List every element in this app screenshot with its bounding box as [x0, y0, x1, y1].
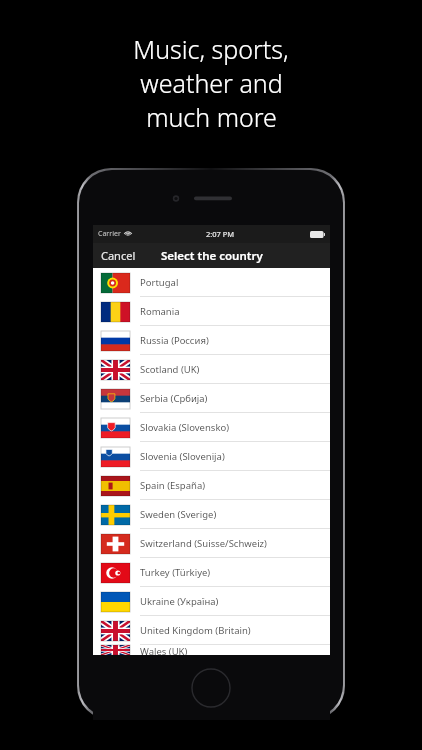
button[interactable]: Russia (Россия) — [93, 326, 330, 355]
staticText: Sweden (Sverige) — [140, 508, 217, 521]
staticText: Wales (UK) — [140, 645, 188, 655]
button[interactable]: Switzerland (Suisse/Schweiz) — [93, 529, 330, 558]
staticText: Turkey (Türkiye) — [140, 566, 211, 579]
staticText: Cancel — [101, 248, 136, 263]
button[interactable]: Serbia (Србија) — [93, 384, 330, 413]
button[interactable]: Wales (UK) — [93, 645, 330, 655]
staticText: Romania — [140, 305, 180, 318]
button[interactable]: Cancel — [98, 245, 139, 266]
button[interactable]: Ukraine (Україна) — [93, 587, 330, 616]
staticText: Carrier — [98, 229, 121, 239]
staticText: 2:07 PM — [206, 229, 235, 239]
staticText: Music, sports, — [133, 32, 289, 66]
staticText: Slovenia (Slovenija) — [140, 450, 225, 463]
button[interactable]: Portugal — [93, 268, 330, 297]
staticText: Switzerland (Suisse/Schweiz) — [140, 537, 267, 550]
staticText: weather and — [140, 66, 283, 100]
staticText: Serbia (Србија) — [140, 392, 208, 405]
staticText: Scotland (UK) — [140, 363, 200, 376]
button[interactable]: Slovenia (Slovenija) — [93, 442, 330, 471]
button[interactable]: Spain (España) — [93, 471, 330, 500]
staticText: Select the country — [161, 248, 263, 264]
button[interactable]: United Kingdom (Britain) — [93, 616, 330, 645]
button[interactable]: Scotland (UK) — [93, 355, 330, 384]
button[interactable]: Turkey (Türkiye) — [93, 558, 330, 587]
staticText: Slovakia (Slovensko) — [140, 421, 230, 434]
button[interactable]: Romania — [93, 297, 330, 326]
button[interactable]: Sweden (Sverige) — [93, 500, 330, 529]
button[interactable]: Slovakia (Slovensko) — [93, 413, 330, 442]
staticText: Ukraine (Україна) — [140, 595, 219, 608]
staticText: United Kingdom (Britain) — [140, 624, 251, 637]
staticText: much more — [146, 100, 277, 134]
other: Home — [190, 667, 232, 709]
staticText: Portugal — [140, 276, 179, 289]
staticText: Spain (España) — [140, 479, 206, 492]
staticText: Russia (Россия) — [140, 334, 209, 347]
